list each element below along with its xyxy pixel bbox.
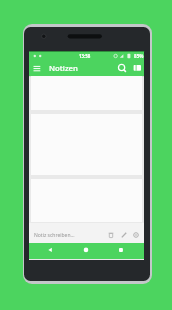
button[interactable] (117, 63, 127, 73)
button[interactable] (42, 244, 58, 258)
staticText: 85% (134, 53, 144, 59)
staticText: Notiz schreiben... (34, 232, 75, 239)
button[interactable]: Notiz schreiben... (29, 223, 144, 244)
button[interactable] (119, 230, 129, 240)
button[interactable] (131, 230, 141, 240)
button[interactable] (78, 244, 94, 258)
staticText: Notizen (49, 63, 78, 74)
button[interactable] (106, 230, 116, 240)
staticText: 13:58 (79, 53, 91, 59)
button[interactable] (31, 63, 43, 73)
button[interactable] (133, 64, 142, 72)
button[interactable] (113, 244, 129, 258)
